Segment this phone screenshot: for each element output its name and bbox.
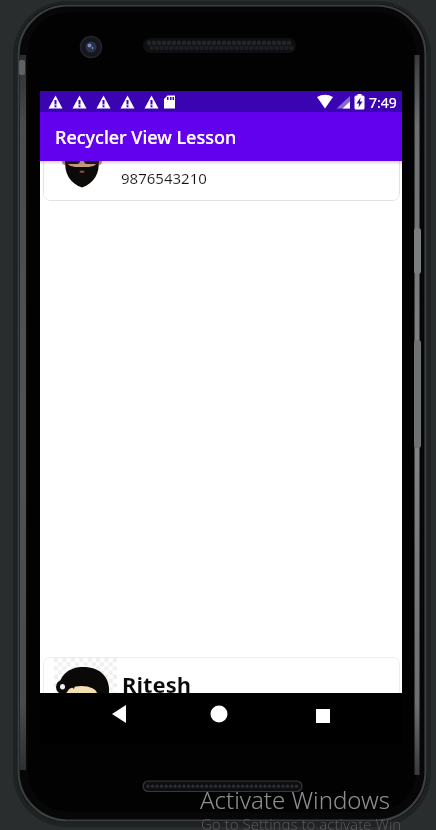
button[interactable] [97,693,141,735]
button[interactable] [301,693,345,735]
staticText: Go to Settings to activate Win [201,814,402,830]
button[interactable] [43,130,400,201]
button[interactable] [197,693,241,735]
button[interactable] [43,657,400,717]
staticText: Activate Windows [200,783,390,816]
staticText: Ritesh [122,669,192,699]
staticText: Recycler View Lesson [55,125,237,150]
staticText: 9876543210 [121,168,207,188]
staticText: 7:49 [369,93,397,112]
